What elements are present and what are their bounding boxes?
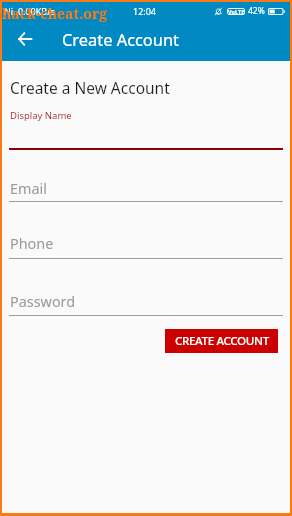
staticText: hack-cheat.org <box>2 4 108 23</box>
staticText: 12:04 <box>133 5 157 17</box>
staticText: Email <box>10 179 47 199</box>
staticText: VoLTE <box>228 8 245 15</box>
button[interactable]: Back <box>9 23 41 55</box>
staticText: 42% <box>248 5 265 17</box>
button[interactable]: CREATE ACCOUNT <box>165 329 278 353</box>
staticText: Ni. 0.00KB/s <box>4 5 55 17</box>
staticText: Create Account <box>62 28 179 50</box>
staticText: Password <box>10 292 76 312</box>
staticText: CREATE ACCOUNT <box>175 333 269 349</box>
staticText: Create a New Account <box>10 77 170 98</box>
staticText: Phone <box>10 234 54 254</box>
staticText: Display Name <box>10 109 72 122</box>
